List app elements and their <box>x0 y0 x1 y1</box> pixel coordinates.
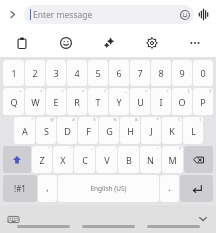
staticText: O <box>178 96 186 108</box>
button[interactable]: V <box>96 146 117 173</box>
staticText: I <box>159 96 163 108</box>
button[interactable]: W <box>25 88 45 115</box>
button[interactable]: N <box>140 146 161 173</box>
staticText: 5 <box>95 67 101 79</box>
button[interactable]: E <box>46 88 66 115</box>
staticText: 4 <box>74 67 80 79</box>
staticText: W <box>31 96 40 108</box>
staticText: 0 <box>200 67 206 79</box>
staticText: Z <box>39 154 45 166</box>
staticText: & <box>135 117 138 122</box>
button[interactable]: F <box>78 117 98 144</box>
button[interactable]: Hide keyboard <box>196 212 210 226</box>
button[interactable]: B <box>118 146 139 173</box>
staticText: # <box>72 117 75 122</box>
button[interactable]: K <box>162 117 182 144</box>
staticText: X <box>60 154 66 166</box>
button[interactable]: I <box>151 88 171 115</box>
staticText: / <box>104 88 106 93</box>
button[interactable]: Stickers <box>44 28 87 57</box>
button[interactable]: T <box>88 88 108 115</box>
staticText: < <box>145 88 148 93</box>
button[interactable]: Y <box>109 88 129 115</box>
button[interactable]: English (US) <box>58 175 159 202</box>
button[interactable]: A <box>14 117 35 144</box>
button[interactable]: AI assist <box>87 28 130 57</box>
staticText: , <box>46 181 49 193</box>
staticText: 3 <box>53 67 59 79</box>
staticText: L <box>191 125 196 137</box>
staticText: R <box>74 96 80 108</box>
button[interactable]: Settings <box>130 28 173 57</box>
button[interactable]: Switch keyboard <box>6 212 20 226</box>
staticText: P <box>200 96 206 108</box>
staticText: ] <box>209 88 211 93</box>
button[interactable]: U <box>130 88 150 115</box>
staticText: H <box>127 125 134 137</box>
button[interactable]: 1 <box>3 60 24 86</box>
staticText: A <box>22 125 28 137</box>
button[interactable]: G <box>99 117 119 144</box>
button[interactable]: Expand toolbar <box>4 6 21 23</box>
staticText: × <box>40 88 43 93</box>
button[interactable]: P <box>193 88 213 115</box>
staticText: Y <box>116 96 122 108</box>
button[interactable]: 0 <box>193 60 213 86</box>
button[interactable]: 7 <box>130 60 150 86</box>
button[interactable]: H <box>120 117 140 144</box>
staticText: 9 <box>179 67 185 79</box>
button[interactable]: 6 <box>109 60 129 86</box>
button[interactable]: Enter <box>180 175 213 202</box>
button[interactable]: S <box>36 117 56 144</box>
staticText: ) <box>199 117 201 122</box>
staticText: - <box>135 146 137 151</box>
staticText: : <box>91 146 93 151</box>
staticText: 7 <box>137 67 143 79</box>
staticText: E <box>53 96 59 108</box>
button[interactable]: C <box>74 146 95 173</box>
button[interactable]: 2 <box>25 60 45 86</box>
staticText: " <box>48 146 50 151</box>
staticText: D <box>64 125 71 137</box>
button[interactable]: 3 <box>46 60 66 86</box>
staticText: ~ <box>156 146 159 151</box>
button[interactable]: 9 <box>172 60 192 86</box>
staticText: J <box>150 125 153 137</box>
button[interactable]: M <box>162 146 183 173</box>
button[interactable]: Q <box>3 88 24 115</box>
staticText: @ <box>50 117 54 122</box>
button[interactable]: Enter message <box>24 5 194 24</box>
button[interactable]: Clipboard <box>0 28 44 57</box>
staticText: English (US) <box>90 184 127 193</box>
button[interactable]: Emoji <box>178 8 191 21</box>
staticText: 1 <box>11 67 17 79</box>
staticText: ; <box>113 146 115 151</box>
button[interactable]: Z <box>32 146 52 173</box>
staticText: ( <box>178 117 180 122</box>
staticText: ÷ <box>61 88 64 93</box>
button[interactable]: X <box>53 146 73 173</box>
button[interactable]: More options <box>173 28 216 57</box>
button[interactable]: 8 <box>151 60 171 86</box>
staticText: [ <box>188 88 190 93</box>
button[interactable]: L <box>183 117 203 144</box>
button[interactable]: J <box>141 117 161 144</box>
button[interactable]: R <box>67 88 87 115</box>
staticText: N <box>147 154 154 166</box>
button[interactable]: !#1 <box>3 175 37 202</box>
button[interactable]: O <box>172 88 192 115</box>
button[interactable]: D <box>57 117 77 144</box>
staticText: 8 <box>158 67 164 79</box>
staticText: !#1 <box>14 183 26 194</box>
staticText: M <box>168 154 177 166</box>
button[interactable]: 5 <box>88 60 108 86</box>
staticText: B <box>126 154 132 166</box>
button[interactable]: 4 <box>67 60 87 86</box>
button[interactable]: Shift <box>3 146 31 173</box>
button[interactable]: Backspace <box>184 146 213 173</box>
button[interactable]: , <box>38 175 57 202</box>
button[interactable]: Voice input <box>195 6 212 23</box>
button[interactable]: . <box>160 175 179 202</box>
staticText: _ <box>125 88 127 93</box>
staticText: ' <box>70 146 71 151</box>
